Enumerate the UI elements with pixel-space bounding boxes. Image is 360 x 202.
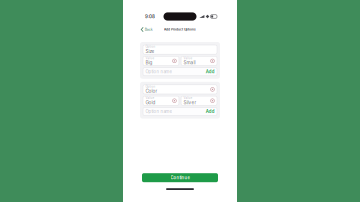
button[interactable]: Add (203, 69, 215, 74)
staticText: Color (145, 88, 157, 94)
button[interactable]: Remove Silver (210, 98, 215, 103)
staticText: Add (206, 109, 215, 114)
button[interactable]: Continue (142, 173, 218, 182)
staticText: Gold (145, 100, 155, 105)
button[interactable]: Remove Gold (172, 98, 177, 103)
button[interactable]: Remove Color (210, 87, 215, 92)
staticText: Option (145, 45, 155, 48)
staticText: Small (183, 60, 195, 65)
staticText: Value (145, 96, 154, 100)
staticText: Silver (183, 100, 196, 105)
staticText: 9:08 (145, 14, 155, 19)
staticText: Option name (145, 69, 171, 74)
staticText: Value (183, 56, 192, 60)
button[interactable]: Add (203, 109, 215, 114)
staticText: Continue (170, 175, 189, 180)
staticText: Option name (145, 109, 171, 114)
staticText: Add (206, 69, 215, 74)
staticText: Big (145, 60, 152, 65)
button[interactable]: Remove Big (172, 59, 177, 63)
staticText: Option (145, 85, 155, 88)
staticText: Value (145, 56, 154, 60)
staticText: Back (145, 27, 153, 32)
button[interactable]: Remove Small (210, 59, 215, 63)
staticText: Add Product Options (164, 28, 196, 31)
staticText: Size (145, 49, 154, 54)
button[interactable]: Back (123, 24, 157, 35)
staticText: Value (183, 96, 192, 100)
